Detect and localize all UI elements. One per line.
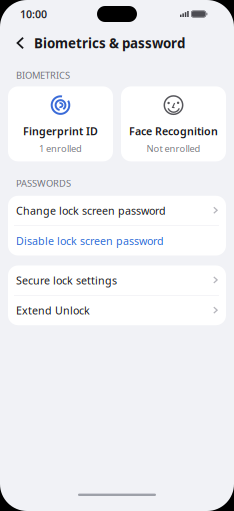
staticText: Biometrics & password: [34, 34, 185, 52]
staticText: Face Recognition: [129, 124, 218, 138]
staticText: 10:00: [20, 7, 47, 21]
staticText: 1 enrolled: [39, 142, 82, 155]
staticText: PASSWORDS: [16, 177, 71, 189]
staticText: Not enrolled: [146, 142, 200, 155]
button[interactable]: Disable lock screen password: [8, 226, 226, 255]
staticText: Secure lock settings: [16, 273, 117, 287]
button[interactable]: Secure lock settings: [8, 265, 226, 295]
staticText: Change lock screen password: [16, 203, 166, 218]
button[interactable]: Back: [0, 37, 34, 49]
staticText: BIOMETRICS: [16, 69, 70, 81]
button[interactable]: Extend Unlock: [8, 296, 226, 325]
staticText: Disable lock screen password: [16, 234, 164, 248]
staticText: Extend Unlock: [16, 303, 90, 318]
button[interactable]: Change lock screen password: [8, 196, 226, 225]
button[interactable]: Face Recognition: [121, 86, 226, 161]
button[interactable]: Fingerprint ID: [8, 86, 113, 161]
staticText: Fingerprint ID: [23, 124, 98, 138]
